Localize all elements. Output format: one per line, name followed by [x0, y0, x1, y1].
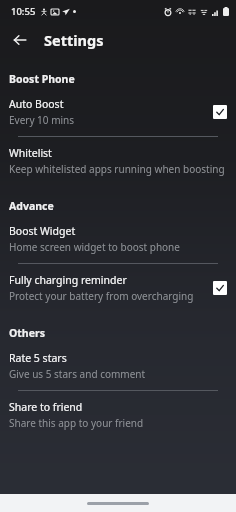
staticText: Settings — [44, 30, 104, 50]
button[interactable]: Boost Widget — [0, 215, 236, 263]
staticText: 10:55 — [11, 5, 36, 18]
staticText: Fully charging reminder — [9, 273, 127, 287]
button[interactable]: Rate 5 stars — [0, 342, 236, 390]
staticText: Home screen widget to boost phone — [9, 240, 180, 254]
button[interactable]: Auto Boost — [0, 88, 236, 136]
button[interactable]: Toggle — [213, 105, 227, 119]
button[interactable]: Share to friend — [0, 391, 236, 439]
staticText: Share this app to your friend — [9, 416, 144, 430]
staticText: Rate 5 stars — [9, 351, 67, 365]
staticText: Keep whitelisted apps running when boost… — [9, 162, 225, 176]
staticText: Others — [9, 326, 45, 340]
staticText: Every 10 mins — [9, 113, 75, 127]
button[interactable]: Fully charging reminder — [0, 264, 236, 312]
staticText: Advance — [9, 199, 54, 213]
staticText: Auto Boost — [9, 97, 64, 111]
staticText: Protect your battery from overcharging — [9, 289, 194, 303]
staticText: Give us 5 stars and comment — [9, 367, 146, 381]
staticText: Boost Phone — [9, 72, 75, 86]
button[interactable]: Back — [6, 26, 34, 54]
button[interactable]: Whitelist — [0, 137, 236, 185]
staticText: Share to friend — [9, 400, 83, 414]
staticText: Whitelist — [9, 146, 52, 160]
button[interactable]: Toggle — [213, 281, 227, 295]
staticText: Boost Widget — [9, 224, 76, 238]
